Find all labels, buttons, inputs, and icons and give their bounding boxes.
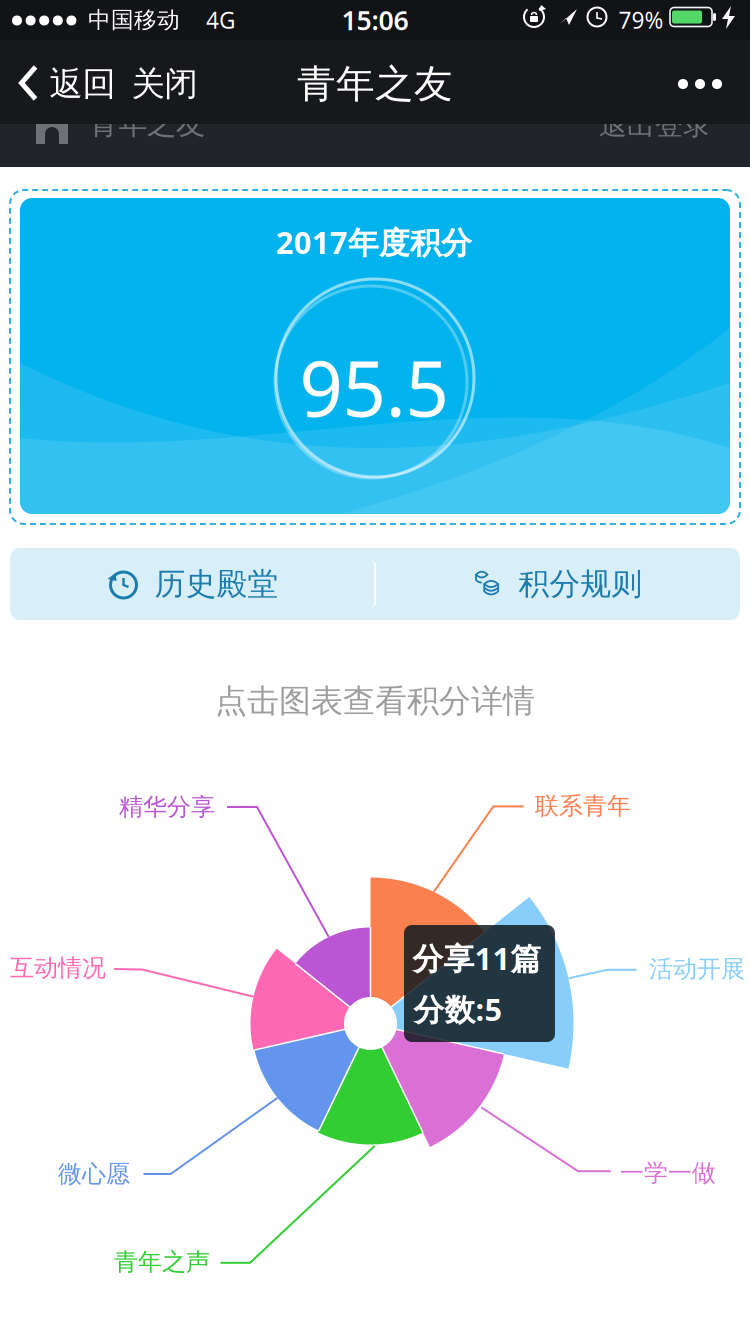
staticText: 青年之友 xyxy=(297,60,453,108)
staticText: 积分规则 xyxy=(518,565,642,603)
staticText: 95.5 xyxy=(299,336,448,437)
button[interactable]: 首页 青年之友 xyxy=(89,106,205,142)
staticText: 活动开展 xyxy=(649,954,745,984)
staticText: 4G xyxy=(206,5,236,35)
staticText: 关闭 xyxy=(131,63,197,104)
staticText: 青年之友 xyxy=(89,106,205,142)
staticText: 互动情况 xyxy=(10,953,106,983)
button[interactable]: More xyxy=(660,42,740,126)
staticText: 79% xyxy=(618,5,663,35)
staticText: 返回 xyxy=(49,63,115,104)
staticText: 联系青年 xyxy=(535,791,631,821)
staticText: 2017年度积分 xyxy=(276,222,472,262)
staticText: 精华分享 xyxy=(119,792,215,822)
button[interactable]: 返回 xyxy=(20,42,115,126)
staticText: 微心愿 xyxy=(58,1159,130,1189)
staticText: 中国移动 xyxy=(88,6,180,34)
button[interactable]: 历史殿堂 xyxy=(10,548,375,620)
button[interactable]: 关闭 xyxy=(131,42,197,126)
staticText: 历史殿堂 xyxy=(154,565,278,603)
staticText: 青年之声 xyxy=(114,1247,210,1277)
staticText: 点击图表查看积分详情 xyxy=(215,681,535,721)
staticText: 分数:5 xyxy=(413,989,502,1029)
staticText: 15:06 xyxy=(341,2,408,38)
staticText: 分享11篇 xyxy=(412,938,541,978)
staticText: 退出登录 xyxy=(599,108,711,142)
button[interactable]: 退出登录 xyxy=(599,108,711,142)
staticText: 一学一做 xyxy=(620,1158,716,1188)
button[interactable]: 积分规则 xyxy=(375,548,740,620)
